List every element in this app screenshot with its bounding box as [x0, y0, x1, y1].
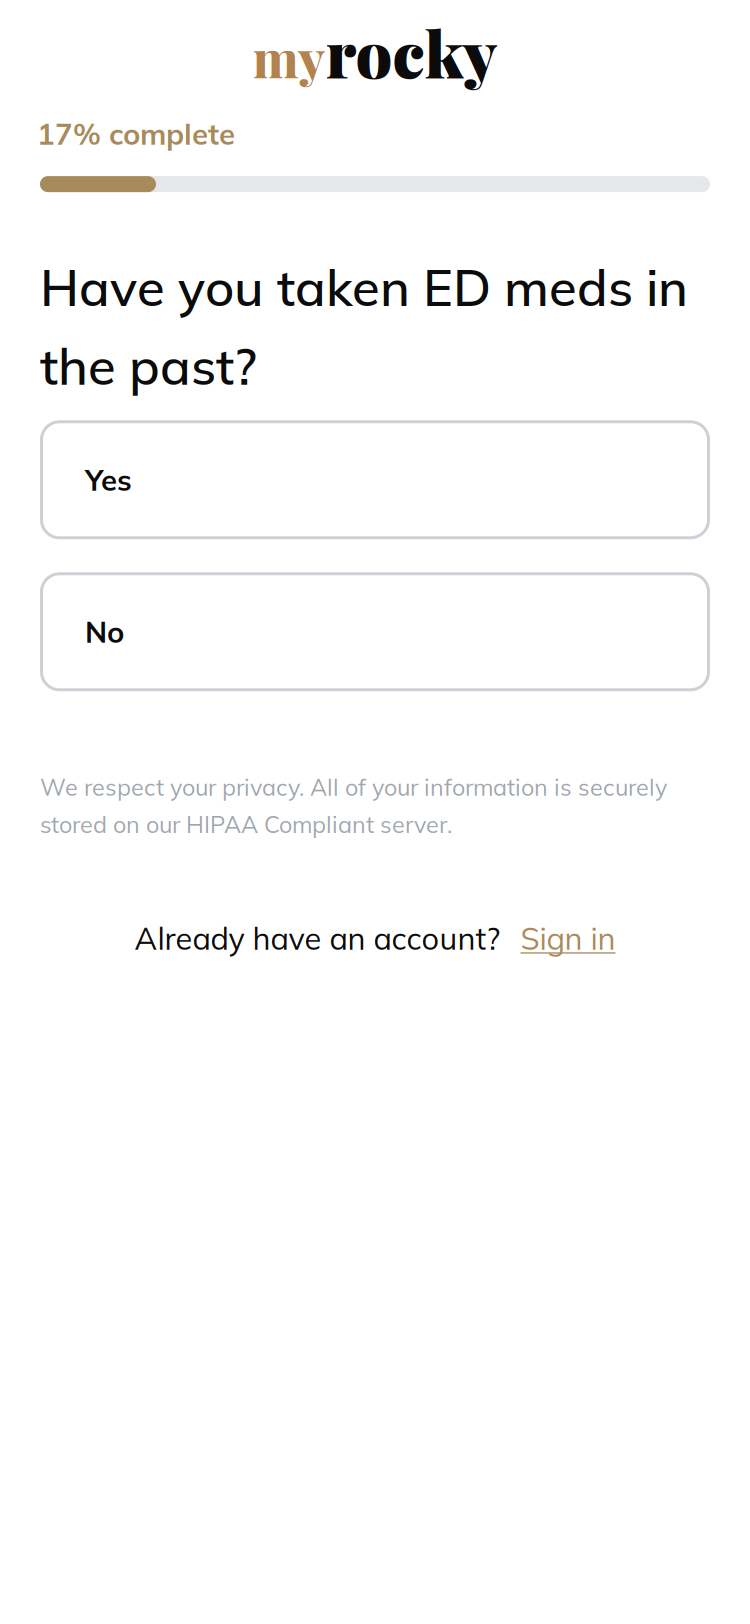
staticText: Have you taken ED meds in the past? — [40, 255, 688, 397]
button[interactable]: Yes — [40, 420, 710, 539]
staticText: Yes — [85, 461, 132, 498]
staticText: We respect your privacy. All of your inf… — [40, 772, 667, 839]
staticText: my — [252, 23, 325, 91]
staticText: Already have an account? — [134, 919, 500, 957]
staticText: No — [85, 613, 124, 650]
staticText: rocky — [325, 9, 497, 94]
button[interactable]: Sign in — [520, 919, 615, 957]
staticText: 17% complete — [37, 115, 235, 152]
staticText: Sign in — [520, 919, 615, 957]
button[interactable]: No — [40, 572, 710, 691]
